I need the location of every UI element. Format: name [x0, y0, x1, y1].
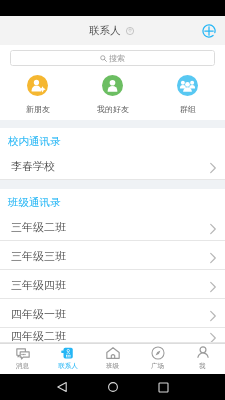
button[interactable]: 我的好友 — [75, 66, 150, 120]
staticText: 我 — [199, 362, 206, 370]
staticText: 三年级四班 — [11, 278, 66, 292]
staticText: 联系人 — [58, 362, 78, 370]
staticText: 我的好友 — [97, 104, 129, 114]
staticText: 三年级二班 — [11, 220, 66, 234]
button[interactable]: 四年级二班 — [0, 328, 225, 343]
staticText: 搜索 — [109, 53, 125, 63]
button[interactable]: Help — [124, 25, 136, 37]
button[interactable]: Recent apps — [153, 377, 173, 397]
button[interactable]: 班级 — [90, 344, 135, 374]
button[interactable]: 搜索 — [10, 50, 215, 66]
staticText: 四年级二班 — [11, 329, 66, 343]
button[interactable]: 三年级三班 — [0, 241, 225, 270]
button[interactable]: 四年级一班 — [0, 299, 225, 328]
button[interactable]: Back — [52, 377, 72, 397]
staticText: 群组 — [180, 104, 196, 114]
button[interactable]: 广场 — [135, 344, 180, 374]
button[interactable]: 李春学校 — [0, 151, 225, 180]
button[interactable]: 联系人 — [45, 344, 90, 374]
staticText: 班级 — [106, 362, 119, 370]
staticText: 校内通讯录 — [8, 135, 61, 148]
button[interactable]: Home — [103, 377, 123, 397]
button[interactable]: 我 — [180, 344, 225, 374]
button[interactable]: 新朋友 — [0, 66, 75, 120]
staticText: 三年级三班 — [11, 249, 66, 263]
staticText: 广场 — [151, 362, 164, 370]
button[interactable]: 消息 — [0, 344, 45, 374]
staticText: 新朋友 — [26, 104, 50, 114]
staticText: 班级通讯录 — [8, 196, 61, 209]
staticText: 联系人 — [89, 24, 121, 37]
button[interactable]: 三年级二班 — [0, 212, 225, 241]
button[interactable]: 三年级四班 — [0, 270, 225, 299]
staticText: 四年级一班 — [11, 307, 66, 321]
staticText: 消息 — [16, 362, 29, 370]
button[interactable]: Add contact — [200, 22, 218, 40]
button[interactable]: 群组 — [150, 66, 225, 120]
staticText: 李春学校 — [11, 159, 55, 173]
